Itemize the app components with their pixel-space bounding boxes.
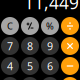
staticText: 9 <box>47 39 53 53</box>
staticText: 5 <box>27 59 33 73</box>
button[interactable]: Negate <box>21 17 39 35</box>
staticText: 7 <box>7 39 13 53</box>
staticText: 11,449 <box>24 0 79 14</box>
staticText: 6 <box>47 59 53 73</box>
staticText: C <box>7 20 13 32</box>
button[interactable]: 2 <box>21 77 39 80</box>
button[interactable]: 7 <box>1 37 19 55</box>
button[interactable]: 8 <box>21 37 39 55</box>
button[interactable]: Add <box>61 77 79 80</box>
staticText: 4 <box>7 59 13 73</box>
button[interactable]: Clear <box>1 17 19 35</box>
button[interactable]: Multiply <box>61 37 79 55</box>
button[interactable]: 4 <box>1 57 19 75</box>
button[interactable]: Percent <box>41 17 59 35</box>
button[interactable]: 6 <box>41 57 59 75</box>
button[interactable]: 3 <box>41 77 59 80</box>
button[interactable]: Divide <box>61 17 79 35</box>
button[interactable]: 5 <box>21 57 39 75</box>
staticText: 8 <box>27 39 33 53</box>
button[interactable]: Subtract <box>61 57 79 75</box>
button[interactable]: 1 <box>1 77 19 80</box>
button[interactable]: 9 <box>41 37 59 55</box>
staticText: % <box>46 20 54 32</box>
